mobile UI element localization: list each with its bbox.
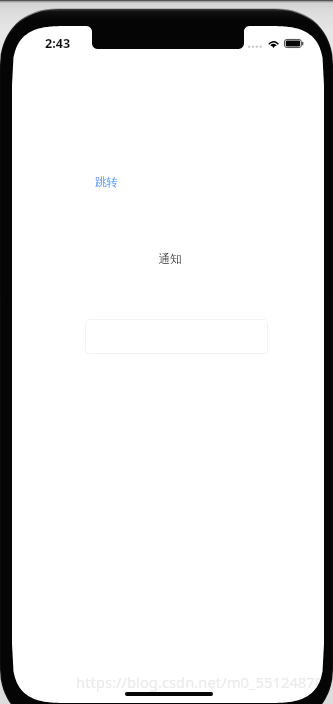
staticText: https://blog.csdn.net/m0_55124878: [76, 672, 324, 692]
other: Battery: [284, 39, 305, 48]
staticText: 2:43: [45, 35, 71, 52]
other: Cellular signal: [248, 45, 263, 49]
staticText: 通知: [14, 252, 324, 267]
button[interactable]: [85, 319, 268, 354]
staticText: 跳转: [95, 175, 119, 190]
other: Wi-Fi: [267, 39, 280, 48]
button[interactable]: 跳转: [91, 172, 123, 193]
